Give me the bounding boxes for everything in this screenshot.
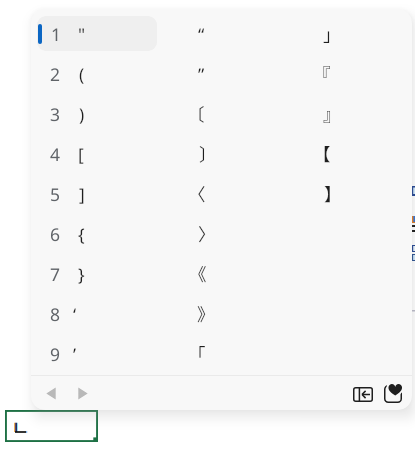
button[interactable] [37,56,157,91]
button[interactable] [297,56,407,91]
button[interactable] [297,96,407,131]
button[interactable] [37,216,157,251]
button[interactable] [171,296,291,331]
button[interactable] [37,256,157,291]
button[interactable] [297,136,407,171]
button[interactable] [37,176,157,211]
button[interactable] [171,256,291,291]
button[interactable]: Collapse panel [348,379,378,409]
button[interactable] [171,96,291,131]
button[interactable] [171,336,291,371]
button[interactable] [297,16,407,51]
button[interactable] [37,296,157,331]
button[interactable]: Previous page [37,379,65,407]
button[interactable] [171,136,291,171]
button[interactable] [171,176,291,211]
button[interactable]: Next page [69,379,97,407]
button[interactable] [37,16,157,51]
button[interactable]: Favorites [378,379,408,409]
button[interactable] [37,136,157,171]
button[interactable] [297,176,407,211]
button[interactable] [37,336,157,371]
button[interactable] [171,56,291,91]
button[interactable] [37,96,157,131]
button[interactable] [171,16,291,51]
button[interactable] [171,216,291,251]
